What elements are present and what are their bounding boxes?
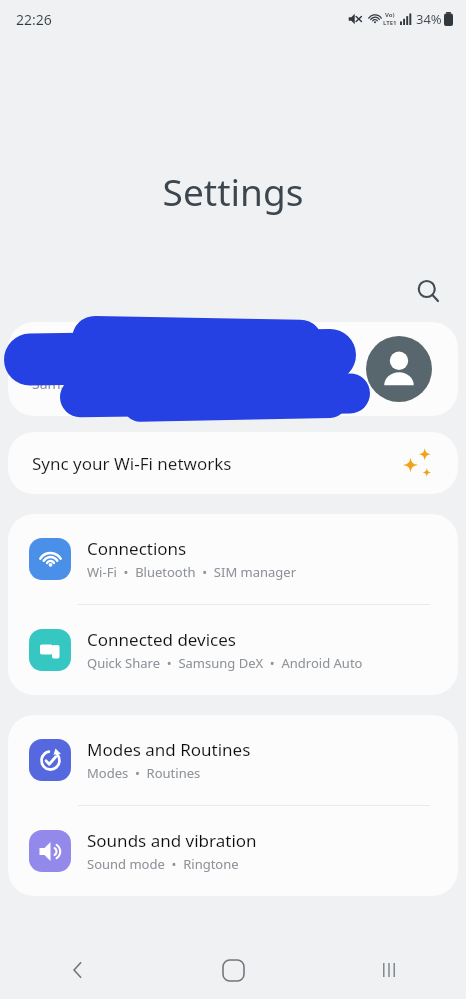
staticText: Samsung account: [32, 374, 150, 393]
button[interactable]: Home: [156, 941, 311, 999]
button[interactable]: Search: [406, 269, 450, 313]
button[interactable]: Recent apps: [311, 941, 466, 999]
staticText: 22:26: [16, 10, 52, 29]
staticText: Settings: [0, 166, 466, 216]
staticText: Quick Share • Samsung DeX • Android Auto: [87, 654, 363, 672]
button[interactable]: Back: [0, 941, 156, 999]
staticText: LTE1: [383, 19, 397, 27]
staticText: Wi-Fi • Bluetooth • SIM manager: [87, 563, 297, 581]
staticText: Sync your Wi-Fi networks: [32, 452, 232, 475]
button[interactable]: Connections: [8, 514, 458, 604]
staticText: Connections: [87, 537, 187, 560]
button[interactable]: Sync your Wi-Fi networks: [8, 432, 458, 494]
button[interactable]: Sounds and vibration: [8, 806, 458, 896]
staticText: Vo): [385, 11, 395, 19]
staticText: Modes • Routines: [87, 764, 201, 782]
button[interactable]: Modes and Routines: [8, 715, 458, 805]
button[interactable]: Connected devices: [8, 605, 458, 695]
staticText: Connected devices: [87, 628, 237, 651]
staticText: Sound mode • Ringtone: [87, 855, 239, 873]
staticText: Sounds and vibration: [87, 829, 257, 852]
staticText: 34%: [416, 10, 442, 28]
button[interactable]: Samsung account: [8, 322, 458, 416]
staticText: Modes and Routines: [87, 738, 251, 761]
